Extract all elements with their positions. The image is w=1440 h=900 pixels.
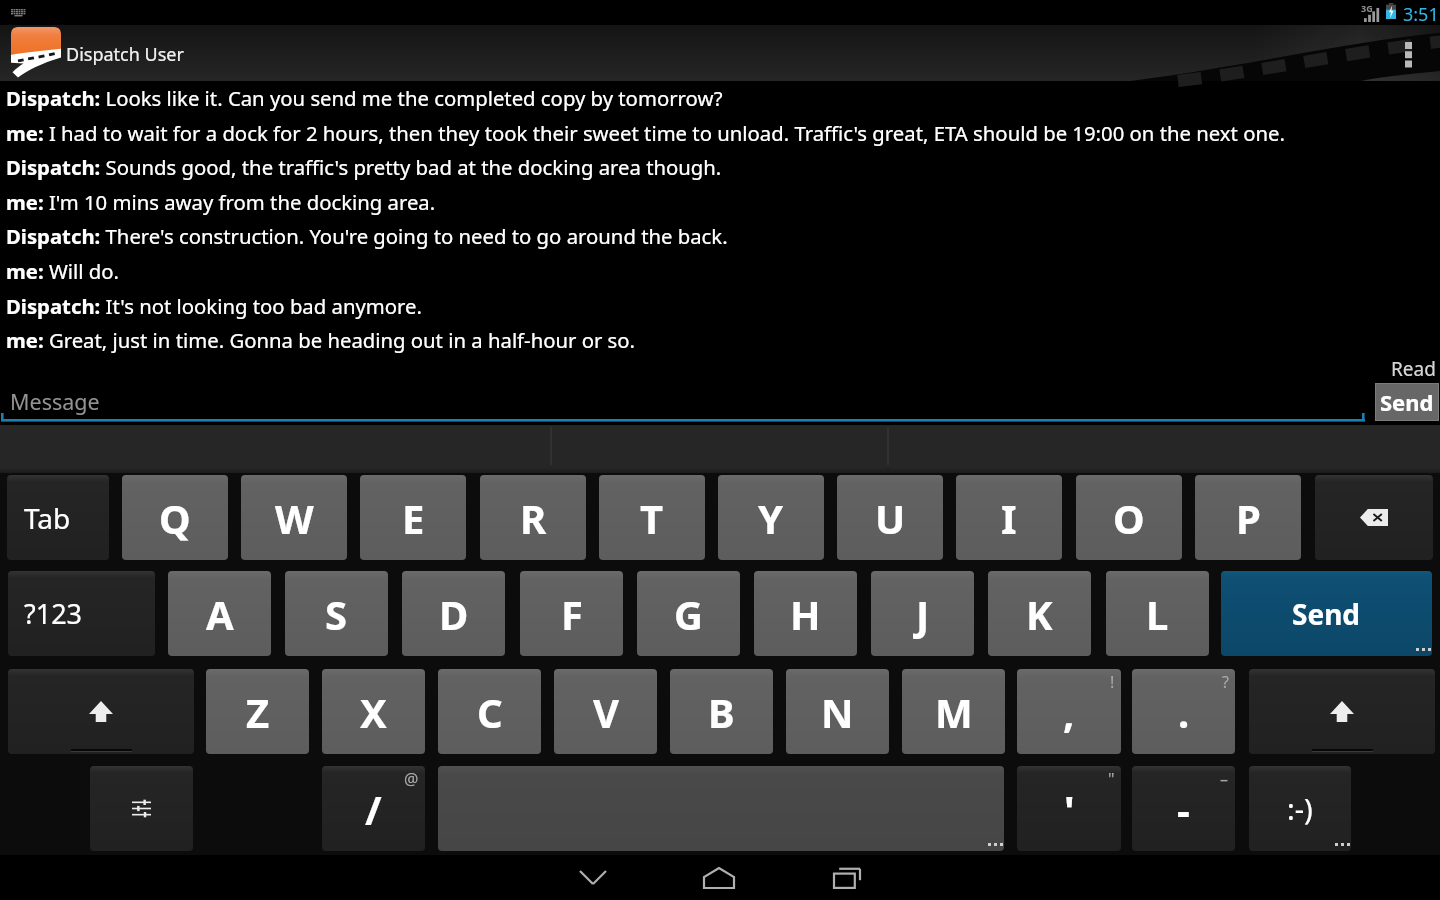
button[interactable]: E — [360, 475, 466, 560]
staticText: K — [1026, 587, 1053, 641]
button[interactable]: Q — [122, 475, 228, 560]
staticText: G — [674, 587, 703, 641]
staticText: me: Will do. — [6, 257, 119, 285]
button[interactable]: Home — [689, 855, 749, 900]
staticText: E — [402, 491, 425, 545]
staticText: R — [520, 491, 547, 545]
other: settings — [90, 766, 193, 851]
staticText: Tab — [24, 499, 71, 537]
staticText: , — [1063, 685, 1075, 739]
button[interactable]: ? — [1132, 669, 1235, 754]
staticText: A — [206, 587, 234, 641]
button[interactable]: Recents — [817, 855, 877, 900]
button[interactable]: L — [1106, 571, 1209, 656]
staticText: ! — [1110, 671, 1115, 693]
button[interactable]: R — [480, 475, 586, 560]
staticText: V — [593, 685, 619, 739]
staticText: ?123 — [24, 595, 83, 632]
button[interactable]: V — [554, 669, 657, 754]
button[interactable]: Back — [563, 855, 623, 900]
button[interactable]: " — [1017, 766, 1121, 851]
staticText: @ — [404, 768, 419, 790]
staticText: F — [561, 587, 583, 641]
button[interactable]: Message — [0, 380, 1366, 422]
button[interactable]: Send — [1221, 571, 1432, 656]
button[interactable]: S — [285, 571, 388, 656]
button[interactable]: settings — [90, 766, 193, 851]
staticText: Dispatch: Looks like it. Can you send me… — [6, 84, 723, 112]
button[interactable]: Z — [206, 669, 309, 754]
button[interactable]: X — [322, 669, 425, 754]
button[interactable]: – — [1132, 766, 1235, 851]
staticText: Send — [1292, 595, 1361, 633]
button[interactable]: Tab — [7, 475, 109, 560]
staticText: B — [708, 685, 735, 739]
staticText: Send — [1380, 387, 1434, 417]
staticText: S — [325, 587, 348, 641]
staticText: ? — [1222, 671, 1229, 693]
staticText: C — [477, 685, 503, 739]
button[interactable]: U — [837, 475, 943, 560]
button[interactable]: T — [599, 475, 705, 560]
staticText: Z — [246, 685, 270, 739]
staticText: me: I'm 10 mins away from the docking ar… — [6, 188, 436, 216]
staticText: H — [790, 587, 821, 641]
staticText: O — [1113, 491, 1145, 545]
staticText: Dispatch User — [66, 42, 184, 67]
button[interactable]: :-) — [1249, 766, 1351, 851]
staticText: me: Great, just in time. Gonna be headin… — [6, 326, 636, 354]
button[interactable]: M — [902, 669, 1005, 754]
staticText: / — [365, 782, 382, 836]
button[interactable]: B — [670, 669, 773, 754]
staticText: Dispatch: Sounds good, the traffic's pre… — [6, 153, 722, 181]
staticText: :-) — [1287, 789, 1313, 828]
button[interactable]: ?123 — [8, 571, 155, 656]
staticText: Q — [159, 491, 191, 545]
staticText: " — [1108, 768, 1115, 790]
staticText: U — [875, 491, 906, 545]
button[interactable]: O — [1076, 475, 1182, 560]
button[interactable]: C — [438, 669, 541, 754]
staticText: N — [821, 685, 854, 739]
staticText: W — [275, 491, 314, 545]
staticText: – — [1220, 768, 1229, 790]
button[interactable]: P — [1195, 475, 1301, 560]
other: backspace — [1315, 475, 1433, 560]
staticText: Dispatch: There's construction. You're g… — [6, 222, 728, 250]
button[interactable]: backspace — [1315, 475, 1433, 560]
button[interactable]: W — [241, 475, 347, 560]
staticText: Y — [758, 491, 784, 545]
button[interactable]: shift — [1249, 669, 1435, 754]
staticText: M — [935, 685, 973, 739]
staticText: - — [1177, 782, 1190, 836]
button[interactable]: shift — [8, 669, 194, 754]
staticText: me: I had to wait for a dock for 2 hours… — [6, 119, 1285, 147]
staticText: 3G — [1361, 2, 1373, 14]
button[interactable]: H — [754, 571, 857, 656]
staticText: X — [360, 685, 387, 739]
button[interactable]: A — [168, 571, 271, 656]
staticText: L — [1146, 587, 1169, 641]
button[interactable] — [438, 766, 1004, 851]
button[interactable]: ! — [1017, 669, 1121, 754]
button[interactable]: K — [988, 571, 1091, 656]
button[interactable]: @ — [322, 766, 425, 851]
button[interactable]: Y — [718, 475, 824, 560]
button[interactable]: G — [637, 571, 740, 656]
button[interactable]: Send — [1376, 384, 1438, 420]
button[interactable]: More options — [1390, 25, 1432, 81]
staticText: 3:51 — [1403, 2, 1439, 27]
staticText: P — [1236, 491, 1261, 545]
button[interactable]: F — [520, 571, 623, 656]
button[interactable]: D — [402, 571, 505, 656]
staticText: Dispatch: It's not looking too bad anymo… — [6, 292, 422, 320]
other: shift — [1249, 669, 1435, 754]
staticText: J — [916, 587, 930, 641]
button[interactable]: N — [786, 669, 889, 754]
button[interactable]: I — [956, 475, 1062, 560]
staticText: . — [1178, 685, 1190, 739]
staticText: T — [640, 491, 664, 545]
button[interactable]: J — [871, 571, 974, 656]
staticText: I — [1001, 491, 1017, 545]
staticText: ' — [1064, 782, 1075, 836]
